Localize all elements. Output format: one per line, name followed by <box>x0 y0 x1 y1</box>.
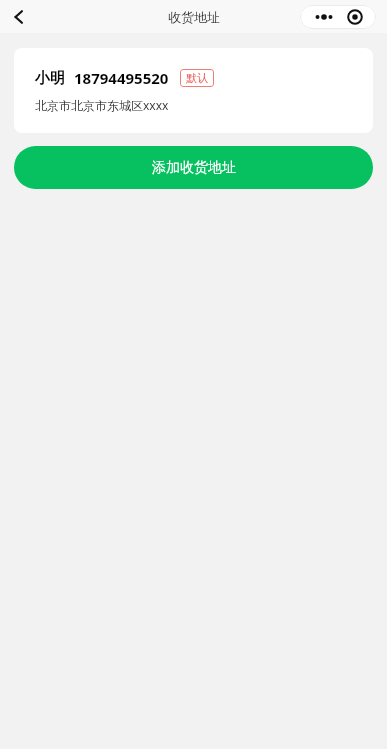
button[interactable]: Menu <box>300 5 376 29</box>
staticText: 收货地址 <box>168 9 220 25</box>
staticText: 北京市北京市东城区xxxx <box>35 97 169 113</box>
staticText: 18794495520 <box>74 68 169 88</box>
button[interactable]: 添加收货地址 <box>14 146 373 189</box>
button[interactable]: 小明 <box>14 48 373 133</box>
button[interactable]: Back <box>4 1 36 33</box>
staticText: 小明 <box>35 69 65 88</box>
staticText: 默认 <box>186 71 208 85</box>
staticText: 添加收货地址 <box>152 159 236 177</box>
